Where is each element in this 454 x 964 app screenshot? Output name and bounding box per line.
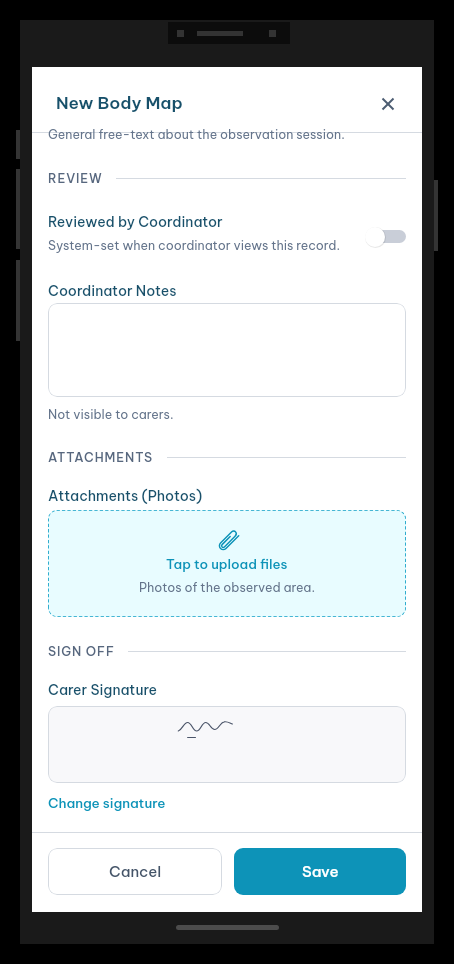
staticText: Attachments (Photos) [48, 487, 203, 505]
button[interactable]: Save [234, 848, 406, 895]
button[interactable]: Cancel [48, 848, 222, 895]
button[interactable]: Close [369, 85, 407, 123]
staticText: Cancel [109, 862, 162, 881]
staticText: General free-text about the observation … [48, 126, 345, 142]
staticText: System-set when coordinator views this r… [48, 237, 340, 253]
staticText: REVIEW [48, 170, 103, 186]
staticText: Save [302, 862, 339, 881]
staticText: Tap to upload files [166, 556, 288, 573]
staticText: Coordinator Notes [48, 282, 177, 300]
button[interactable]: Tap to upload files [48, 510, 406, 617]
staticText: SIGN OFF [48, 643, 115, 659]
staticText: Photos of the observed area. [139, 579, 315, 595]
staticText: Reviewed by Coordinator [48, 213, 223, 231]
staticText: New Body Map [56, 92, 183, 114]
staticText: ATTACHMENTS [48, 449, 154, 465]
staticText: Not visible to carers. [48, 406, 174, 422]
button[interactable]: Reviewed by Coordinator toggle [365, 226, 406, 247]
button[interactable]: Change signature [48, 794, 166, 811]
button[interactable] [48, 303, 406, 397]
staticText: Carer Signature [48, 681, 158, 699]
